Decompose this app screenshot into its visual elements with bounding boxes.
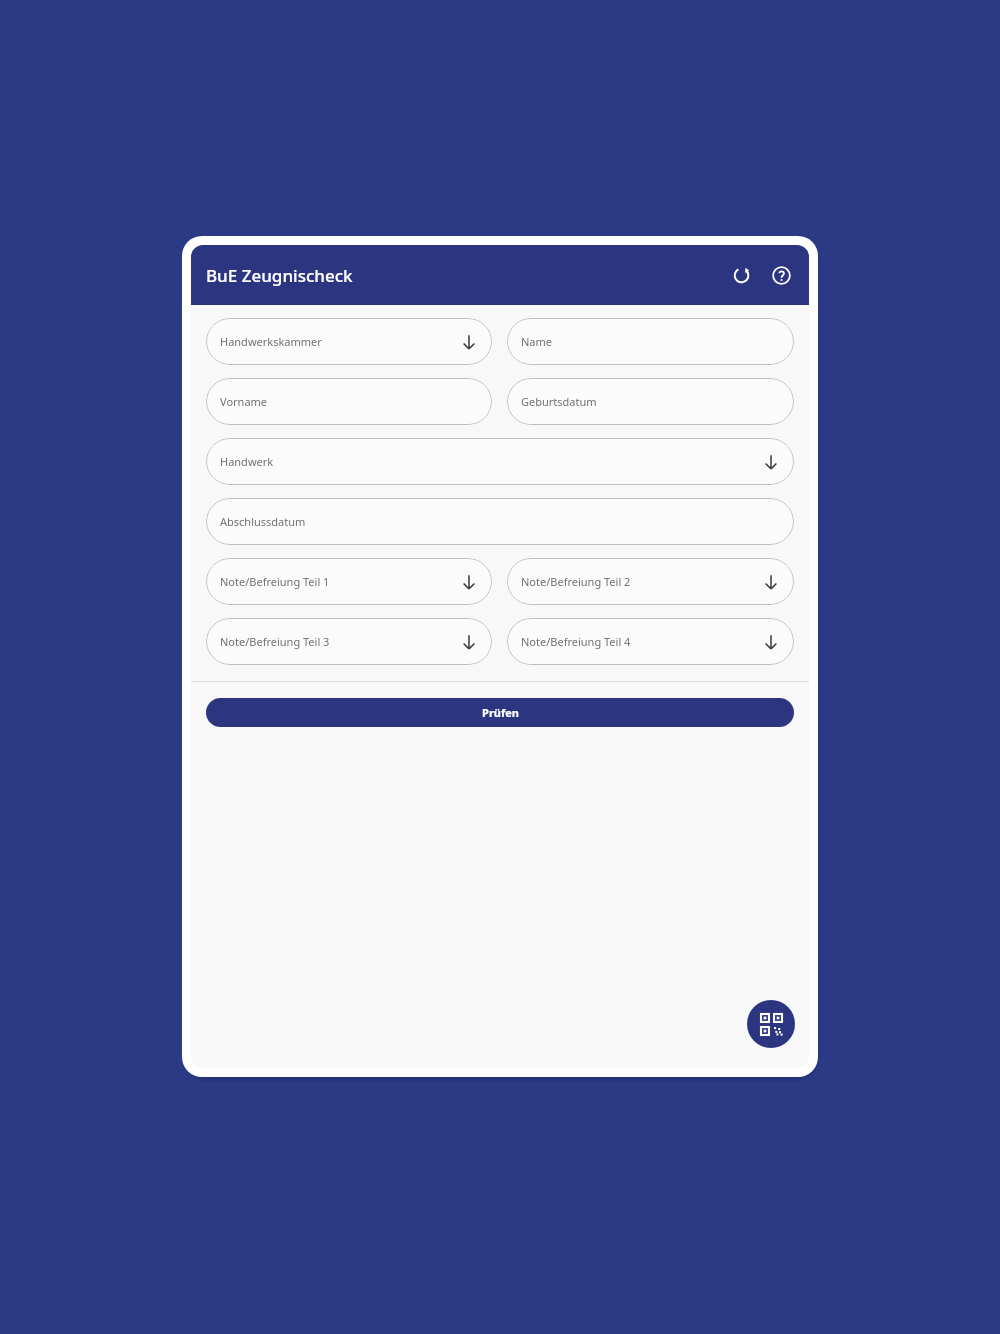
button[interactable]: Handwerkskammer: [206, 318, 492, 365]
button[interactable]: Aktualisieren: [723, 257, 759, 293]
staticText: Handwerk: [220, 454, 274, 469]
staticText: Vorname: [220, 394, 268, 409]
staticText: Note/Befreiung Teil 3: [220, 634, 330, 649]
button[interactable]: Abschlussdatum: [206, 498, 794, 545]
staticText: Note/Befreiung Teil 2: [521, 574, 631, 589]
button[interactable]: Handwerk: [206, 438, 794, 485]
button[interactable]: Name: [507, 318, 794, 365]
staticText: Note/Befreiung Teil 4: [521, 634, 631, 649]
button[interactable]: Vorname: [206, 378, 492, 425]
button[interactable]: Hilfe: [763, 257, 799, 293]
button[interactable]: Prüfen: [206, 698, 794, 727]
button[interactable]: Note/Befreiung Teil 1: [206, 558, 492, 605]
staticText: Abschlussdatum: [220, 514, 306, 529]
button[interactable]: Geburtsdatum: [507, 378, 794, 425]
staticText: Name: [521, 334, 553, 349]
staticText: Prüfen: [482, 705, 519, 720]
button[interactable]: Note/Befreiung Teil 3: [206, 618, 492, 665]
staticText: Handwerkskammer: [220, 334, 322, 349]
button[interactable]: Note/Befreiung Teil 2: [507, 558, 794, 605]
staticText: BuE Zeugnischeck: [206, 264, 353, 287]
button[interactable]: QR-Code scannen: [747, 1000, 795, 1048]
button[interactable]: Note/Befreiung Teil 4: [507, 618, 794, 665]
staticText: Note/Befreiung Teil 1: [220, 574, 330, 589]
staticText: Geburtsdatum: [521, 394, 597, 409]
